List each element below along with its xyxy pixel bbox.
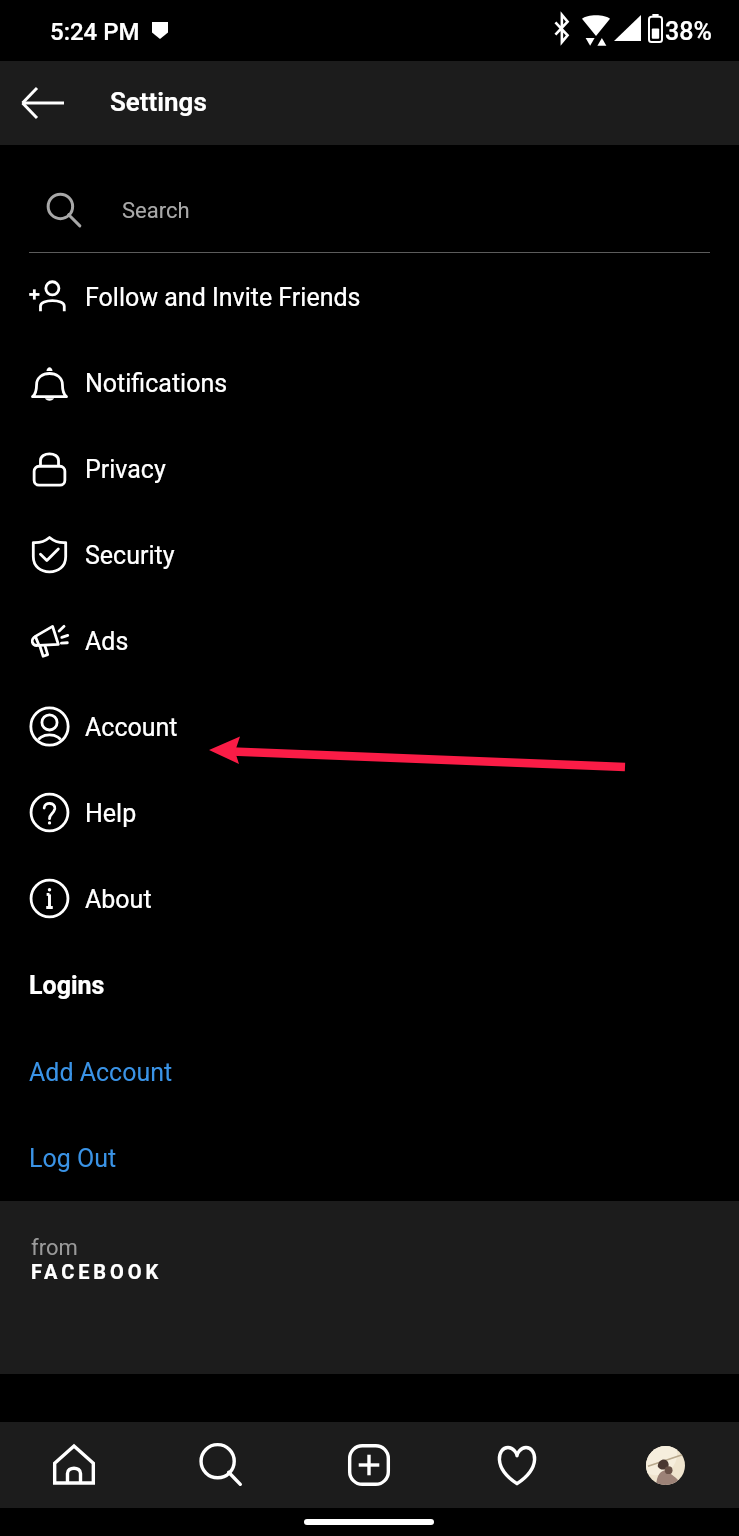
button[interactable]: Log Out [0, 1115, 739, 1201]
staticText: 38% [665, 17, 712, 46]
staticText: Notifications [85, 369, 228, 398]
button[interactable]: Search [0, 145, 739, 252]
staticText: Privacy [85, 455, 166, 484]
button[interactable]: New post [335, 1422, 403, 1508]
staticText: Follow and Invite Friends [85, 283, 361, 312]
staticText: Log Out [29, 1144, 117, 1173]
staticText: Account [85, 713, 178, 742]
staticText: from [31, 1235, 78, 1261]
button[interactable]: Privacy [0, 425, 739, 511]
staticText: 5:24 PM [50, 18, 140, 46]
staticText: Help [85, 799, 137, 828]
button[interactable]: Activity [483, 1422, 551, 1508]
button[interactable]: Help [0, 769, 739, 855]
button[interactable]: About [0, 855, 739, 941]
button[interactable]: Follow and Invite Friends [0, 253, 739, 339]
button[interactable]: Add Account [0, 1029, 739, 1115]
button[interactable]: Notifications [0, 339, 739, 425]
button[interactable]: Back [8, 68, 78, 138]
staticText: FACEBOOK [31, 1260, 163, 1283]
staticText: Security [85, 541, 175, 570]
button[interactable]: Ads [0, 597, 739, 683]
staticText: Search [122, 198, 190, 224]
staticText: Add Account [29, 1058, 173, 1087]
button[interactable]: Account [0, 683, 739, 769]
button[interactable]: Home [40, 1422, 108, 1508]
button[interactable]: Search [187, 1422, 255, 1508]
staticText: Settings [110, 87, 207, 117]
button[interactable]: Profile [631, 1422, 699, 1508]
staticText: Logins [29, 971, 105, 1000]
staticText: Ads [85, 627, 129, 656]
staticText: About [85, 885, 152, 914]
button[interactable]: Security [0, 511, 739, 597]
